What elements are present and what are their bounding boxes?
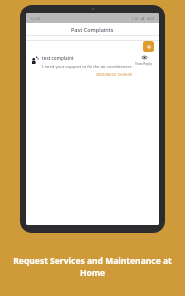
button[interactable]: View Reply: [134, 55, 154, 66]
staticText: 84%: [147, 16, 155, 21]
staticText: I need your support to fix the air condi…: [42, 64, 132, 70]
staticText: 2023/08/23 12:08:20: [31, 72, 132, 77]
staticText: Request Services and Maintenance at Home: [0, 255, 185, 279]
button[interactable]: Add complaint: [143, 41, 154, 52]
staticText: test complaint: [42, 55, 74, 61]
button[interactable]: test complaint: [26, 55, 159, 77]
staticText: LTE: [132, 16, 139, 21]
staticText: View Reply: [135, 61, 153, 66]
staticText: Past Complaints: [71, 26, 114, 33]
staticText: 12:06: [30, 16, 41, 21]
